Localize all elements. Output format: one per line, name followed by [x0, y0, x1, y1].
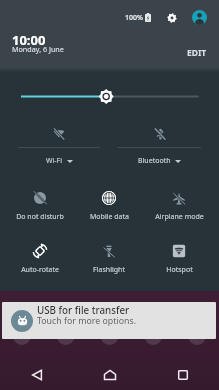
- button[interactable]: Airplane mode: [144, 191, 214, 222]
- staticText: EDIT: [187, 47, 207, 59]
- button[interactable]: Auto-rotate: [5, 244, 74, 275]
- staticText: Monday, 6 June: [12, 44, 64, 54]
- button[interactable]: USB for file transfer: [2, 302, 216, 339]
- staticText: Hotspot: [166, 265, 193, 275]
- button[interactable]: Do not disturb: [5, 191, 74, 222]
- button[interactable]: Bluetooth: [118, 128, 201, 166]
- staticText: Flashlight: [93, 265, 125, 275]
- button[interactable]: User account: [192, 10, 207, 25]
- staticText: Auto-rotate: [21, 265, 59, 275]
- button[interactable]: Flashlight: [74, 244, 144, 275]
- staticText: Wi-Fi: [46, 156, 63, 166]
- staticText: USB for file transfer: [37, 304, 130, 317]
- button[interactable]: Mobile data: [74, 191, 144, 222]
- button[interactable]: Settings: [164, 10, 180, 26]
- staticText: 10:00: [12, 31, 46, 49]
- staticText: Touch for more options.: [37, 315, 137, 327]
- staticText: Mobile data: [90, 212, 129, 222]
- button[interactable]: Home: [73, 360, 146, 390]
- button[interactable]: Back: [0, 360, 73, 390]
- button[interactable]: Recent apps: [146, 360, 219, 390]
- button[interactable]: EDIT: [187, 47, 207, 59]
- staticText: Bluetooth: [138, 156, 171, 166]
- staticText: Do not disturb: [16, 212, 64, 222]
- staticText: 100%: [125, 13, 143, 23]
- button[interactable]: Wi-Fi: [18, 128, 100, 166]
- button[interactable]: Brightness: [0, 0, 219, 291]
- staticText: Airplane mode: [155, 212, 204, 222]
- button[interactable]: Hotspot: [144, 244, 214, 275]
